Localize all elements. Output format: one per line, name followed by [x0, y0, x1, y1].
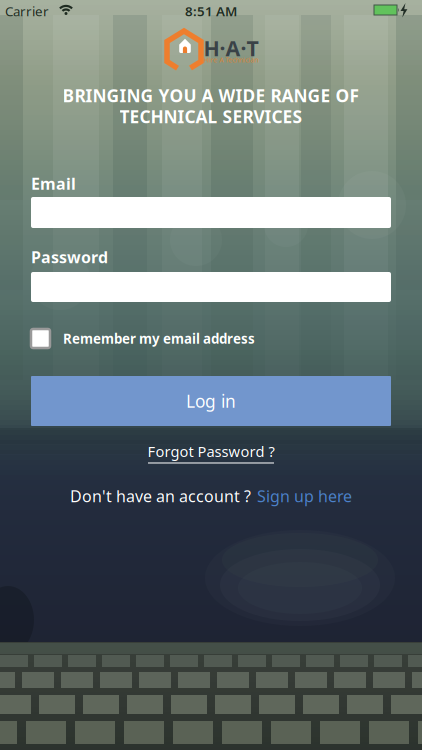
staticText: Sign up here	[257, 485, 352, 507]
staticText: Remember my email address	[63, 330, 255, 347]
button[interactable]: Log in	[31, 376, 391, 426]
staticText: Carrier	[5, 2, 49, 20]
staticText: Password	[31, 246, 108, 268]
staticText: Forgot Password ?	[147, 441, 274, 461]
button[interactable]: Sign up here	[257, 485, 352, 507]
staticText: Log in	[186, 389, 236, 412]
button[interactable]: Remember my email address	[0, 329, 422, 348]
staticText: 8:51 AM	[185, 2, 237, 20]
staticText: TECHNICAL SERVICES	[119, 105, 302, 128]
staticText: BRINGING YOU A WIDE RANGE OF	[62, 84, 359, 107]
staticText: Email	[31, 173, 76, 194]
button[interactable]: Forgot Password ?	[147, 441, 274, 463]
staticText: Don't have an account ?	[70, 485, 251, 507]
staticText: Hire A Technician	[203, 56, 258, 64]
staticText: H·A·T	[203, 34, 258, 62]
